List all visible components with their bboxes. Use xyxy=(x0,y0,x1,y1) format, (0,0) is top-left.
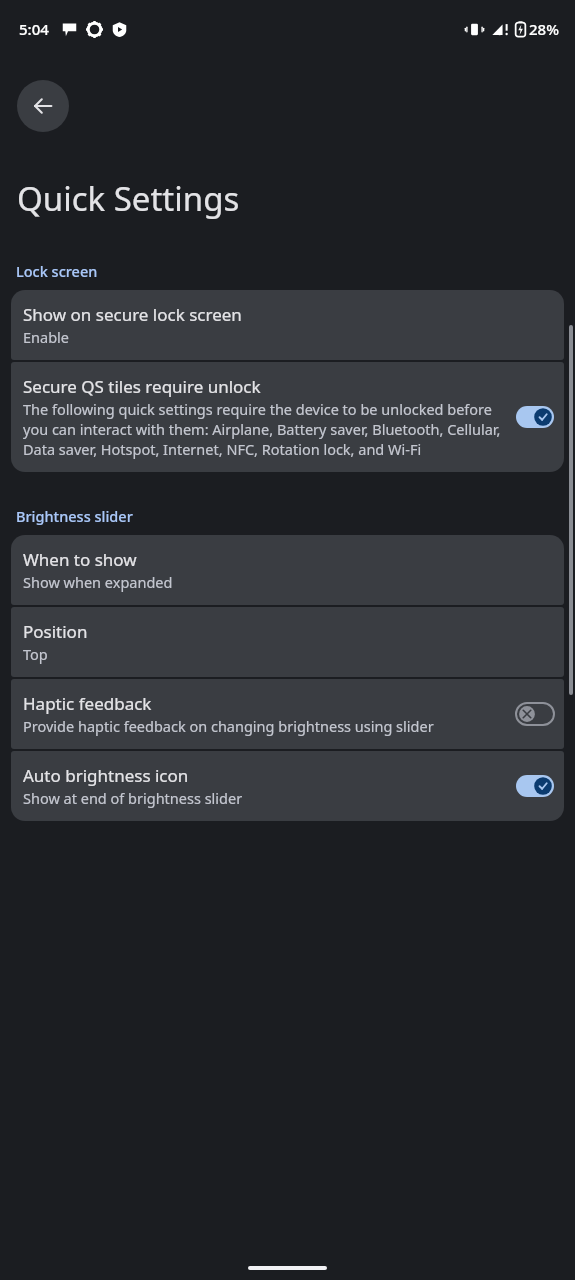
staticText: Show at end of brightness slider xyxy=(23,788,243,808)
staticText: The following quick settings require the… xyxy=(23,399,508,459)
button[interactable]: Back xyxy=(17,80,69,132)
staticText: Provide haptic feedback on changing brig… xyxy=(23,716,434,736)
staticText: Secure QS tiles require unlock xyxy=(23,375,261,398)
button[interactable]: Toggle on xyxy=(516,406,554,428)
button[interactable]: Haptic feedback xyxy=(11,679,564,749)
staticText: Top xyxy=(23,644,48,664)
button[interactable]: Show on secure lock screen xyxy=(11,290,564,360)
staticText: Enable xyxy=(23,327,69,347)
staticText: 28% xyxy=(529,19,559,39)
staticText: Show on secure lock screen xyxy=(23,303,242,326)
staticText: Lock screen xyxy=(16,261,98,281)
button[interactable]: Toggle off xyxy=(516,703,554,725)
staticText: Quick Settings xyxy=(17,176,240,221)
staticText: Show when expanded xyxy=(23,572,173,592)
staticText: Haptic feedback xyxy=(23,692,152,715)
staticText: Brightness slider xyxy=(16,506,133,526)
button[interactable]: Auto brightness icon xyxy=(11,751,564,821)
button[interactable]: When to show xyxy=(11,535,564,605)
staticText: Position xyxy=(23,620,88,643)
button[interactable]: Position xyxy=(11,607,564,677)
staticText: 5:04 xyxy=(19,19,49,39)
staticText: When to show xyxy=(23,548,137,571)
button[interactable]: Toggle on xyxy=(516,775,554,797)
button[interactable]: Secure QS tiles require unlock xyxy=(11,362,564,472)
staticText: Auto brightness icon xyxy=(23,764,189,787)
